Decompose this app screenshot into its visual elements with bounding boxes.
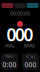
button[interactable]: Heart rate [1, 3, 13, 8]
staticText: 000 [7, 23, 33, 46]
staticText: 0:00 [2, 60, 16, 69]
staticText: MAX [24, 42, 35, 49]
button[interactable]: Distance [26, 3, 38, 8]
button[interactable]: TIME [1, 53, 18, 70]
staticText: KCAL [25, 54, 35, 59]
button[interactable]: KCAL [22, 53, 39, 70]
staticText: TIME [5, 54, 14, 59]
staticText: 00:00:00 [10, 10, 30, 17]
staticText: AVG [5, 42, 15, 49]
button[interactable]: Pace [14, 3, 25, 8]
staticText: 000 [24, 60, 36, 69]
